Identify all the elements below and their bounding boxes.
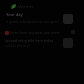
button[interactable]: notes from last week and more — [5, 30, 60, 35]
button[interactable]: Logo — [11, 4, 34, 9]
staticText: Memories — [18, 5, 34, 9]
staticText: notes from last week and more — [10, 30, 60, 35]
button[interactable]: Photo 2 — [63, 38, 73, 48]
staticText: second entry title here today — [5, 38, 54, 43]
other: Logo — [11, 4, 16, 9]
staticText: Your day — [6, 12, 23, 17]
button[interactable]: Photo — [63, 14, 73, 24]
staticText: a gentle subtitle line of text goes — [6, 19, 58, 24]
staticText: subtitle two lines — [5, 44, 31, 48]
